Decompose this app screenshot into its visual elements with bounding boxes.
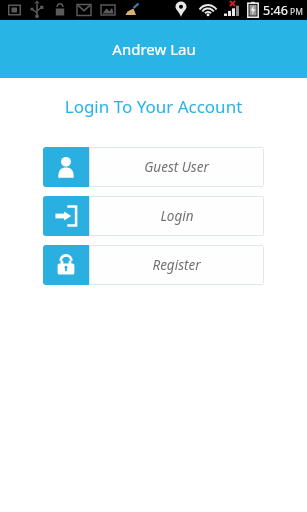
staticText: 5:46 (263, 2, 288, 19)
staticText: Guest User (144, 158, 209, 176)
staticText: Andrew Lau (112, 39, 196, 59)
staticText: Register (152, 256, 201, 274)
button[interactable]: Register (43, 245, 264, 285)
staticText: PM (290, 6, 303, 18)
staticText: Login (160, 207, 194, 225)
button[interactable]: Guest User (43, 147, 264, 187)
button[interactable]: Login (43, 196, 264, 236)
staticText: Login To Your Account (0, 95, 307, 118)
